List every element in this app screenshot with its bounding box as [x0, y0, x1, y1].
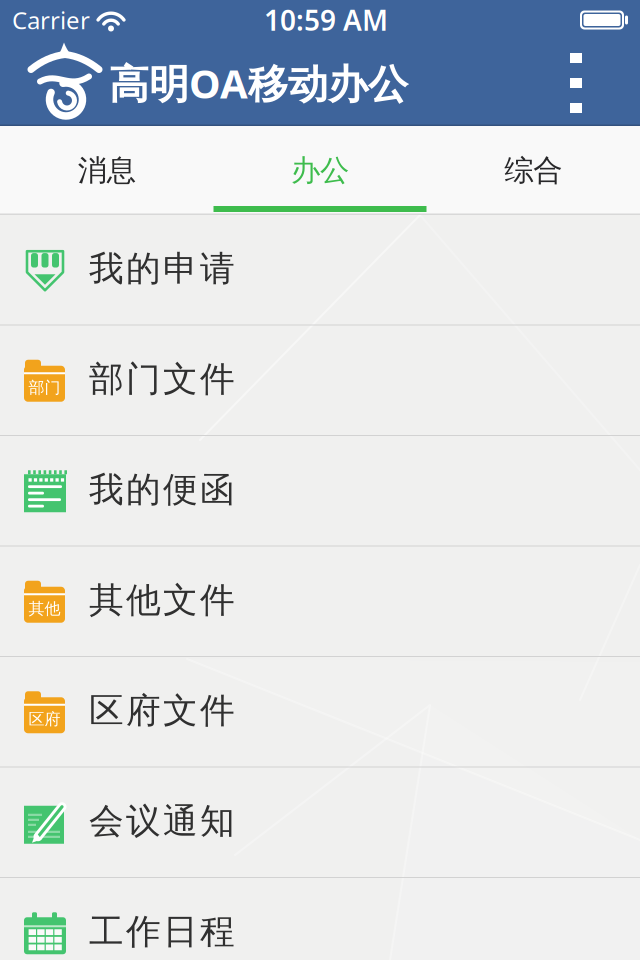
staticText: 其 他 文 件 — [89, 579, 235, 622]
button[interactable]: 办公 — [213, 126, 427, 215]
button[interactable]: More — [570, 53, 640, 113]
button[interactable]: 我 的 便 函 — [0, 436, 640, 546]
button[interactable]: 工 作 日 程 — [0, 878, 640, 960]
staticText: 区府 — [28, 709, 60, 729]
button[interactable]: 我 的 申 请 — [0, 215, 640, 325]
staticText: 部 门 文 件 — [89, 358, 235, 401]
button[interactable]: 区府 — [0, 657, 640, 767]
button[interactable]: 其他 — [0, 546, 640, 657]
staticText: 综合 — [504, 152, 562, 188]
button[interactable]: 消息 — [0, 126, 213, 215]
staticText: 会 议 通 知 — [89, 800, 235, 843]
staticText: 我 的 便 函 — [89, 468, 235, 511]
staticText: 消息 — [78, 152, 136, 188]
staticText: 部门 — [28, 378, 60, 398]
staticText: 10:59 AM — [264, 1, 388, 39]
button[interactable]: 综合 — [427, 126, 640, 215]
staticText: 其他 — [28, 599, 60, 619]
staticText: 工 作 日 程 — [89, 910, 235, 953]
staticText: 办公 — [291, 152, 349, 188]
staticText: Carrier — [12, 4, 90, 36]
staticText: 我 的 申 请 — [89, 247, 235, 290]
staticText: 区 府 文 件 — [89, 689, 235, 732]
button[interactable]: 会 议 通 知 — [0, 767, 640, 878]
staticText: 高明OA移动办公 — [109, 56, 408, 109]
button[interactable]: 部门 — [0, 325, 640, 436]
